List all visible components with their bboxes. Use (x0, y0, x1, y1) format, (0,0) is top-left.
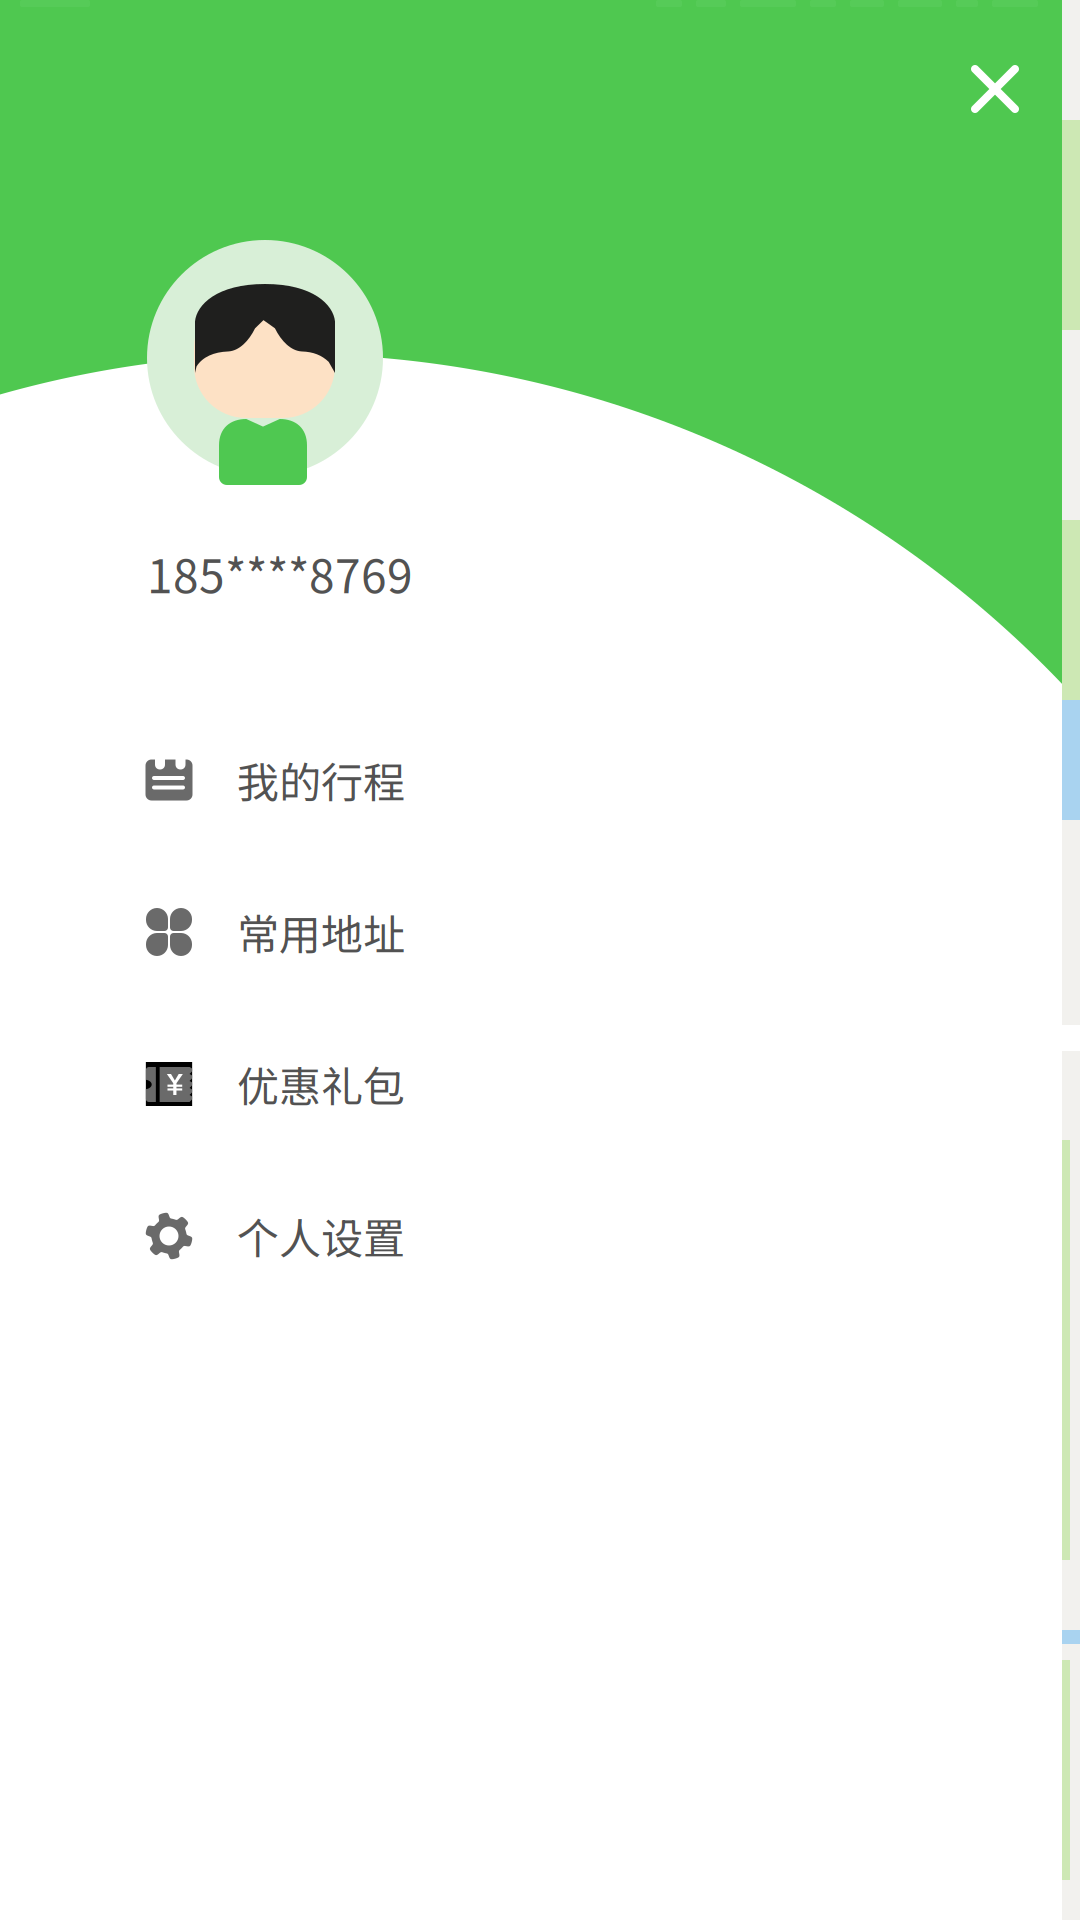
staticText: 个人设置 (237, 1206, 405, 1266)
button[interactable]: 个人设置 (145, 1160, 925, 1312)
staticText: 我的行程 (237, 750, 405, 810)
button[interactable]: 常用地址 (145, 856, 925, 1008)
button[interactable]: 优惠礼包 (145, 1008, 925, 1160)
staticText: 优惠礼包 (237, 1054, 405, 1114)
button[interactable]: 我的行程 (145, 704, 925, 856)
staticText: 常用地址 (237, 902, 405, 962)
staticText: 185****8769 (147, 540, 413, 607)
button[interactable]: Close (940, 34, 1050, 144)
